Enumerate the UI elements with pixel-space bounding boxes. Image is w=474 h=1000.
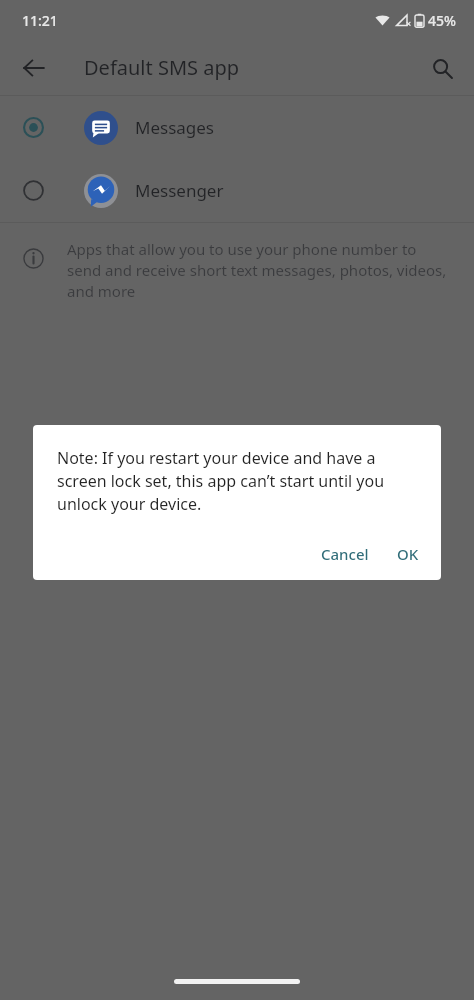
staticText: Messages xyxy=(135,116,215,139)
staticText: Apps that allow you to use your phone nu… xyxy=(67,239,448,302)
button[interactable]: Cancel xyxy=(309,536,381,572)
button[interactable]: OK xyxy=(385,536,431,572)
button[interactable]: Back xyxy=(12,46,56,90)
button[interactable]: Messages xyxy=(0,96,474,159)
staticText: Cancel xyxy=(321,544,369,564)
staticText: Note: If you restart your device and hav… xyxy=(57,447,419,515)
staticText: 45% xyxy=(428,11,456,30)
staticText: Default SMS app xyxy=(84,54,240,81)
staticText: OK xyxy=(397,544,419,564)
staticText: Messenger xyxy=(135,179,224,202)
button[interactable]: Messenger xyxy=(0,159,474,222)
button[interactable]: Search xyxy=(420,46,464,90)
staticText: 11:21 xyxy=(22,11,58,30)
